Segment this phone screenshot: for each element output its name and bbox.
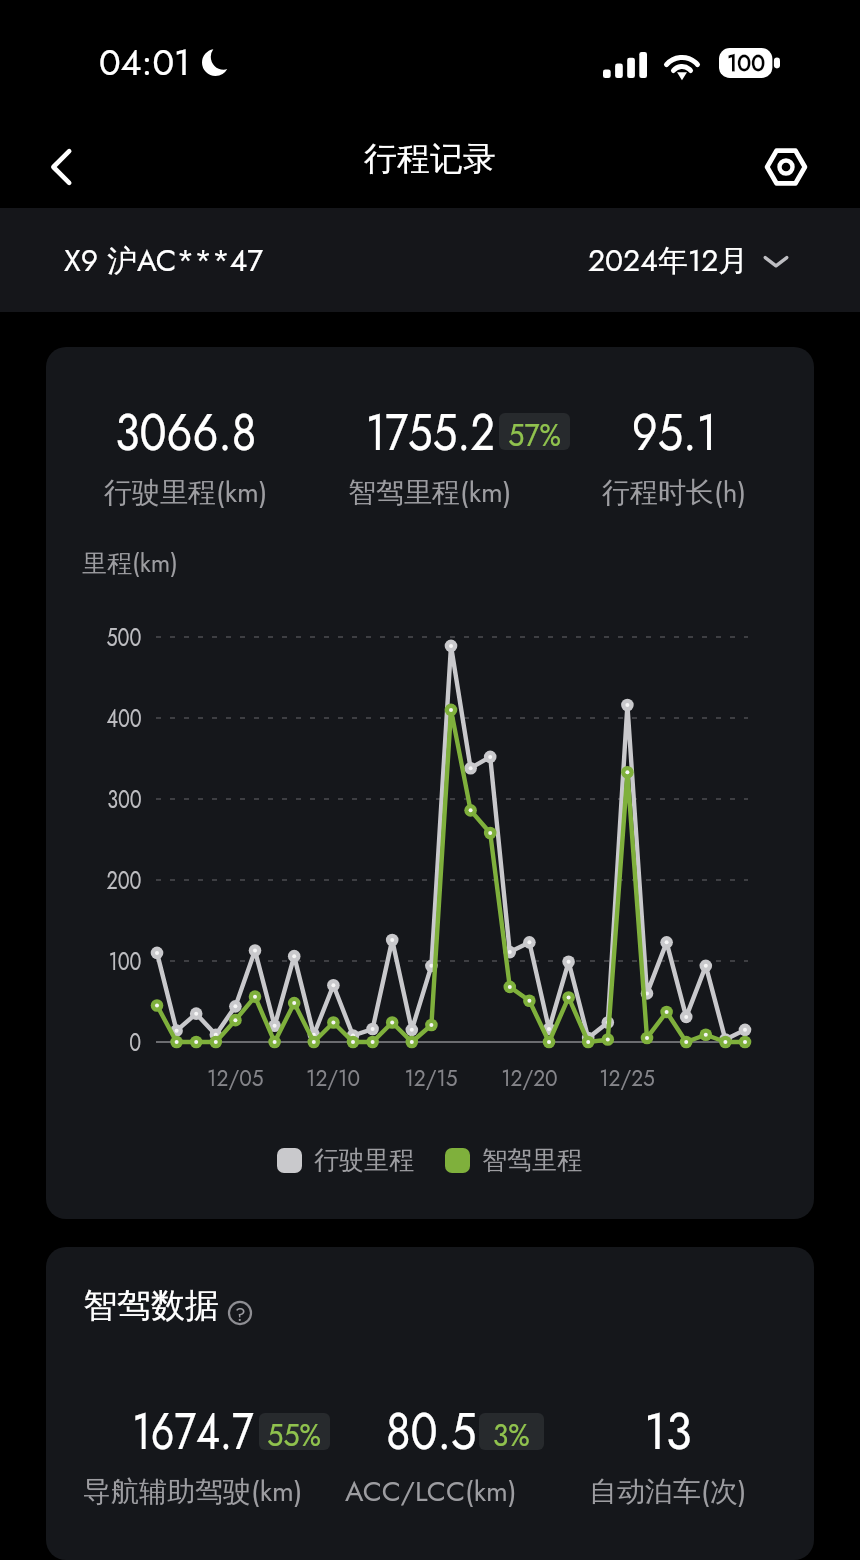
staticText: 行程时长(h) [602, 472, 747, 512]
button[interactable]: Settings [756, 137, 816, 197]
staticText: 行驶里程 [314, 1144, 414, 1177]
staticText: 3% [493, 1413, 530, 1450]
staticText: 55% [267, 1413, 322, 1450]
staticText: 导航辅助驾驶(km) [83, 1471, 303, 1511]
staticText: ? [235, 1301, 246, 1325]
staticText: 95.1 [632, 396, 717, 468]
staticText: 80.5 [386, 1395, 477, 1467]
staticText: 04:01 [99, 36, 191, 88]
staticText: X9 沪AC***47 [64, 239, 263, 282]
button[interactable]: 智驾数据 [83, 1284, 252, 1327]
button[interactable]: Back [28, 133, 96, 201]
button[interactable]: 2024年12月 [588, 239, 788, 282]
staticText: 57% [508, 413, 562, 450]
staticText: 100 [727, 46, 765, 79]
staticText: 智驾数据 [83, 1284, 219, 1327]
staticText: ACC/LCC(km) [345, 1471, 517, 1511]
staticText: 行驶里程(km) [104, 472, 268, 512]
staticText: 1674.7 [132, 1395, 254, 1467]
staticText: 自动泊车(次) [589, 1471, 747, 1511]
staticText: 智驾里程(km) [348, 472, 512, 512]
staticText: 2024年12月 [588, 239, 749, 282]
staticText: 行程记录 [364, 138, 496, 180]
staticText: 里程(km) [82, 545, 179, 581]
staticText: 3066.8 [115, 396, 257, 468]
other: Help [228, 1301, 252, 1325]
staticText: 智驾里程 [482, 1144, 582, 1177]
staticText: 13 [644, 1395, 692, 1467]
staticText: 1755.2 [366, 396, 495, 468]
